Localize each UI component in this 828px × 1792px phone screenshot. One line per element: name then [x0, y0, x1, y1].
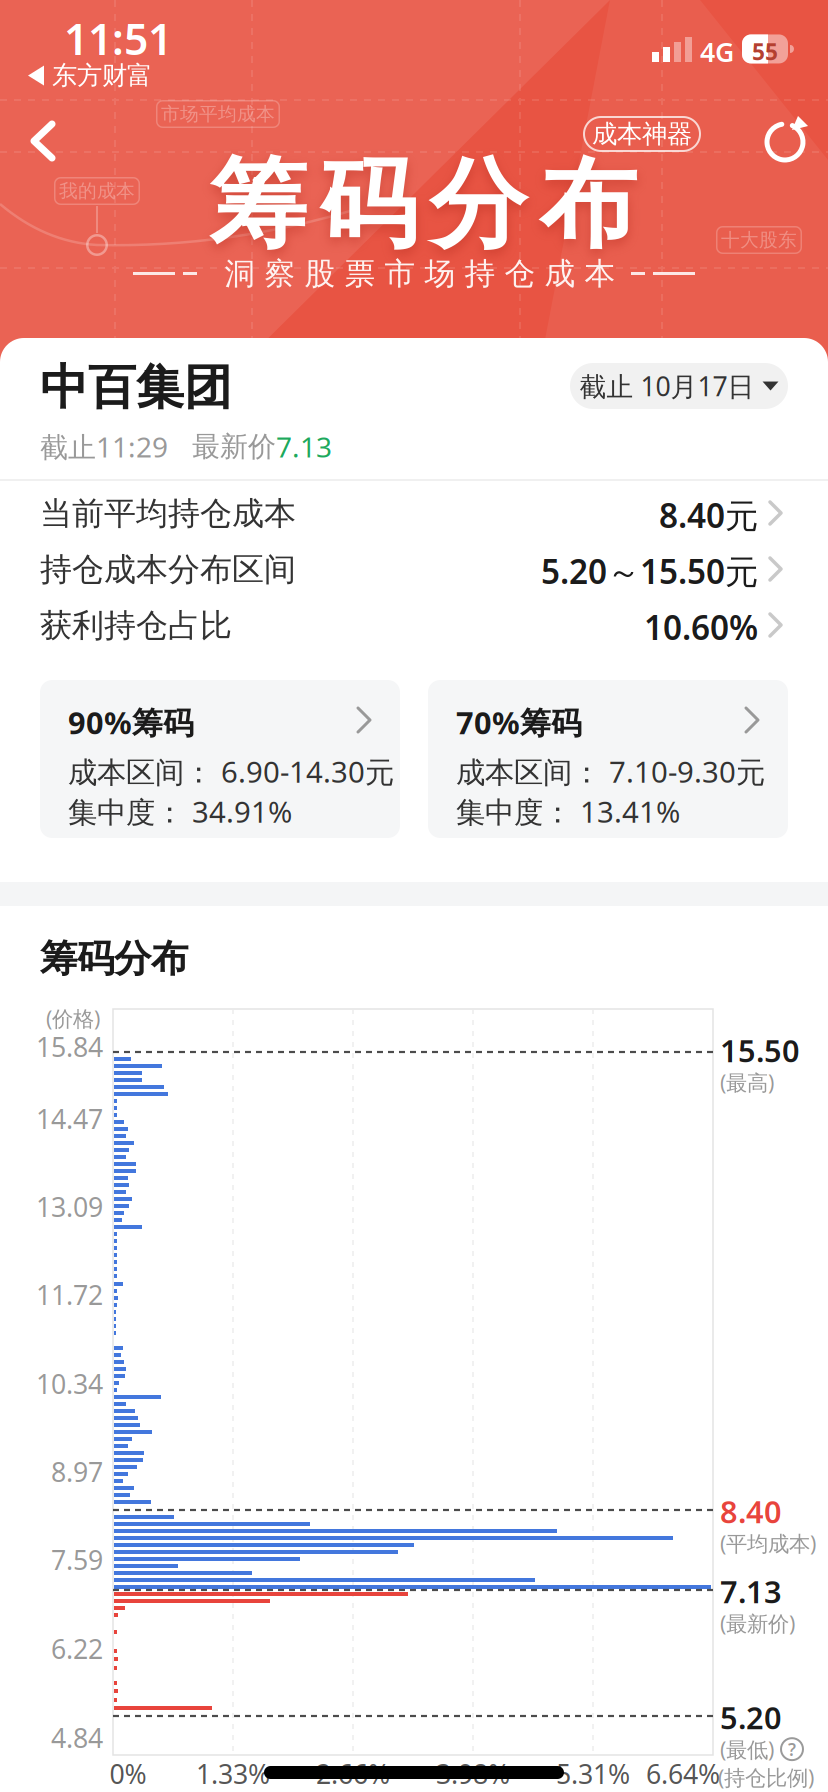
staticText: 截止 10月17日: [579, 368, 754, 404]
staticText: 6.22: [51, 1631, 103, 1666]
staticText: (持仓比例): [718, 1763, 814, 1791]
button[interactable]: 截止 10月17日: [570, 363, 788, 409]
staticText: 90%筹码: [68, 702, 194, 743]
staticText: 十大股东: [721, 228, 797, 251]
staticText: 13.09: [36, 1189, 103, 1224]
staticText: 7.13: [720, 1571, 782, 1612]
staticText: 获利持仓占比: [40, 606, 232, 645]
staticText: 集中度： 34.91%: [68, 792, 292, 831]
staticText: 2.66%: [316, 1756, 390, 1791]
staticText: 15.50: [720, 1030, 800, 1071]
staticText: 筹码分布: [40, 936, 188, 982]
staticText: 成本区间： 6.90-14.30元: [68, 752, 394, 791]
staticText: 最新价: [168, 429, 276, 464]
staticText: 8.40: [720, 1491, 782, 1532]
staticText: 成本区间： 7.10-9.30元: [456, 752, 765, 791]
staticText: 5.20～15.50元: [541, 549, 758, 593]
staticText: 成本神器: [592, 118, 692, 149]
staticText: 市场平均成本: [161, 102, 275, 125]
staticText: (最新价): [720, 1609, 795, 1637]
button[interactable]: 成本神器: [583, 116, 701, 152]
staticText: 6.64%: [646, 1756, 720, 1791]
staticText: 8.40元: [659, 493, 758, 537]
staticText: 70%筹码: [456, 702, 582, 743]
staticText: 1.33%: [196, 1756, 270, 1791]
staticText: 0%: [109, 1756, 146, 1791]
staticText: 集中度： 13.41%: [456, 792, 680, 831]
staticText: 8.97: [51, 1454, 103, 1489]
button[interactable]: 90%筹码: [40, 680, 400, 838]
staticText: 11.72: [36, 1277, 103, 1312]
staticText: 4G: [700, 34, 734, 69]
staticText: 7.13: [276, 428, 332, 465]
staticText: 5.31%: [556, 1756, 630, 1791]
staticText: 4.84: [51, 1720, 103, 1755]
button[interactable]: 刷新: [762, 118, 808, 164]
staticText: 7.59: [51, 1542, 103, 1577]
staticText: 中百集团: [40, 358, 232, 417]
button[interactable]: 帮助: [780, 1737, 804, 1761]
staticText: 10.34: [36, 1366, 103, 1401]
staticText: 11:51: [64, 10, 172, 67]
button[interactable]: 当前平均持仓成本: [0, 485, 828, 541]
button[interactable]: 持仓成本分布区间: [0, 541, 828, 597]
staticText: ?: [788, 1738, 796, 1761]
staticText: (最低): [720, 1735, 774, 1763]
staticText: 洞察股票市场持仓成本: [224, 255, 615, 293]
button[interactable]: 获利持仓占比: [0, 597, 828, 653]
staticText: 东方财富: [52, 60, 152, 91]
staticText: 筹码分布: [209, 145, 636, 265]
staticText: 持仓成本分布区间: [40, 550, 296, 589]
staticText: 15.84: [36, 1029, 103, 1064]
button[interactable]: 返回: [30, 120, 56, 162]
staticText: 14.47: [36, 1101, 103, 1136]
staticText: 10.60%: [644, 605, 758, 649]
staticText: 55: [752, 36, 778, 66]
staticText: 当前平均持仓成本: [40, 494, 296, 533]
staticText: 5.20: [720, 1697, 782, 1738]
staticText: (价格): [46, 1004, 100, 1032]
button[interactable]: 70%筹码: [428, 680, 788, 838]
staticText: (最高): [720, 1068, 774, 1096]
staticText: (平均成本): [720, 1529, 816, 1557]
staticText: 我的成本: [59, 179, 135, 202]
staticText: 3.98%: [436, 1756, 510, 1791]
staticText: 截止11:29: [40, 428, 168, 465]
